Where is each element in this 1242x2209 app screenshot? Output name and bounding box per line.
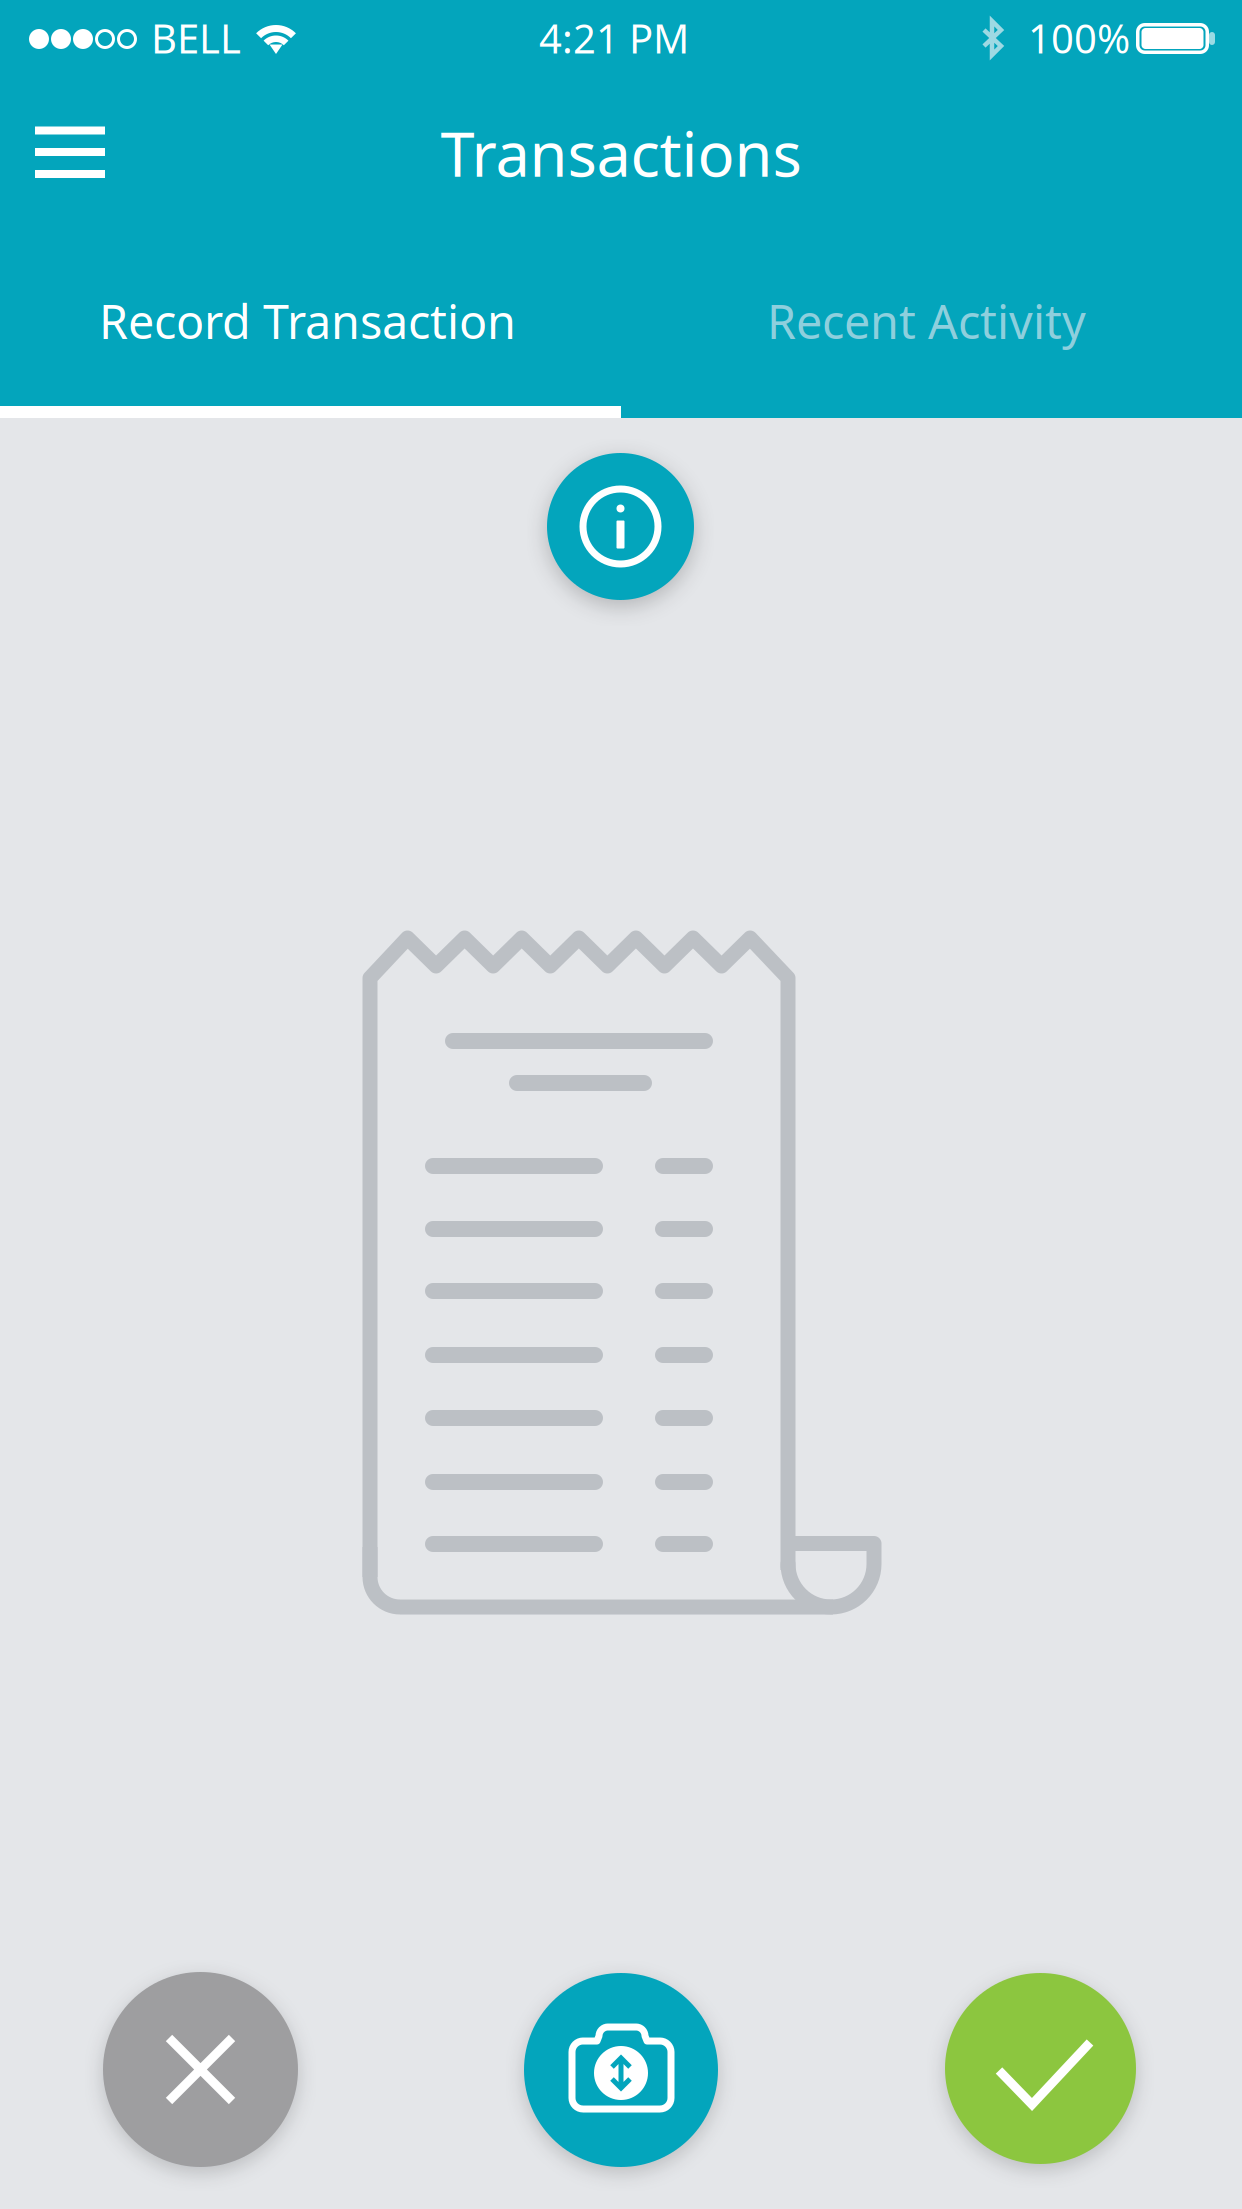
button[interactable]: Record Transaction bbox=[0, 258, 621, 418]
staticText: Transactions bbox=[440, 112, 801, 194]
button[interactable]: Menu bbox=[0, 106, 146, 236]
button[interactable]: Recent Activity bbox=[621, 258, 1242, 418]
button[interactable]: Info bbox=[547, 453, 694, 600]
staticText: Record Transaction bbox=[99, 290, 516, 352]
staticText: 100% bbox=[1028, 11, 1130, 64]
staticText: Recent Activity bbox=[767, 290, 1086, 352]
staticText: BELL bbox=[151, 11, 241, 64]
button[interactable]: Confirm bbox=[945, 1973, 1136, 2164]
button[interactable]: Take photo bbox=[524, 1973, 718, 2167]
button[interactable]: Cancel bbox=[103, 1972, 298, 2167]
staticText: 4:21 PM bbox=[539, 11, 689, 64]
